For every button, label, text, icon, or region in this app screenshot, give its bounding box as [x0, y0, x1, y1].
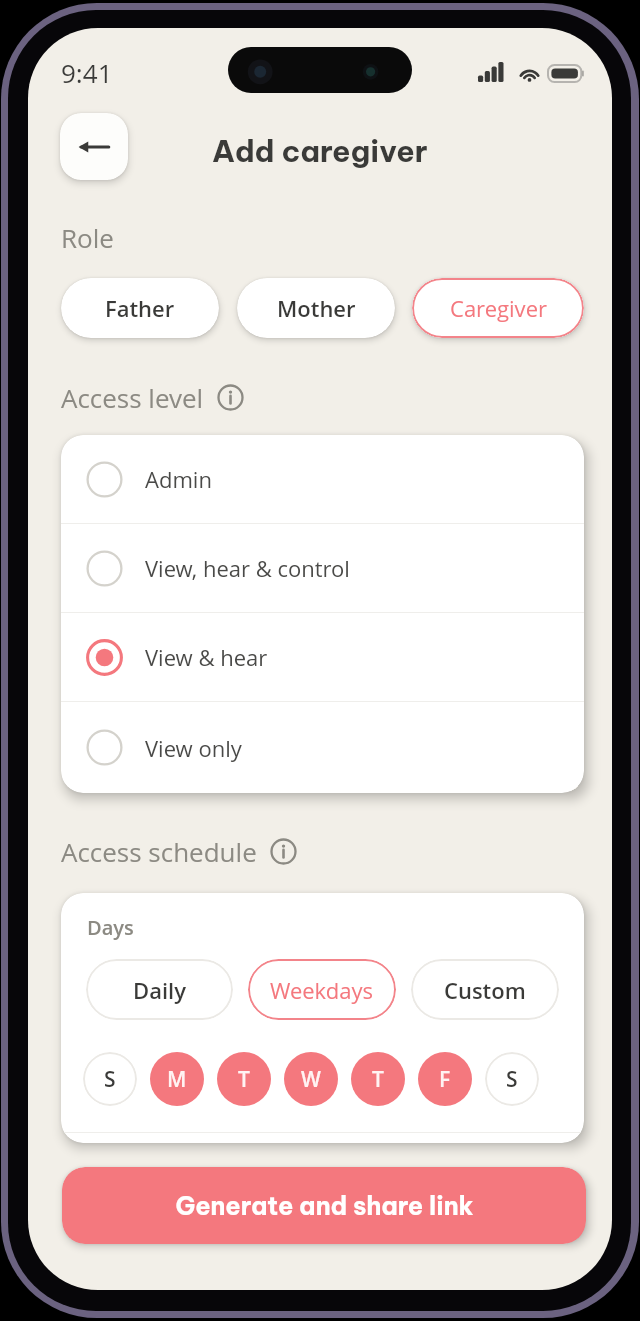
staticText: Mother [277, 293, 356, 323]
button[interactable]: Father [61, 278, 219, 338]
staticText: Access level [61, 380, 204, 415]
staticText: 9:41 [61, 55, 113, 90]
button[interactable]: W [284, 1052, 338, 1106]
staticText: Add caregiver [212, 132, 428, 170]
staticText: S [506, 1065, 518, 1094]
staticText: Custom [444, 975, 526, 1005]
staticText: View only [145, 733, 242, 763]
button[interactable]: Back [60, 113, 128, 180]
button[interactable]: F [418, 1052, 472, 1106]
staticText: W [301, 1065, 321, 1094]
button[interactable]: S [485, 1052, 539, 1106]
button[interactable]: Caregiver [412, 278, 584, 338]
staticText: View, hear & control [145, 553, 350, 583]
button[interactable]: View only [61, 702, 584, 793]
button[interactable]: Admin [61, 435, 584, 523]
button[interactable]: View & hear [61, 613, 584, 701]
staticText: Weekdays [270, 975, 374, 1005]
button[interactable]: Mother [237, 278, 395, 338]
staticText: T [372, 1065, 384, 1094]
staticText: Access schedule [61, 834, 257, 869]
staticText: Days [87, 914, 134, 941]
staticText: Father [105, 293, 175, 323]
staticText: M [167, 1065, 187, 1094]
button[interactable]: M [150, 1052, 204, 1106]
button[interactable]: T [351, 1052, 405, 1106]
staticText: F [439, 1065, 451, 1094]
staticText: Role [61, 220, 114, 255]
staticText: Admin [145, 464, 212, 494]
button[interactable]: Daily [86, 959, 233, 1020]
button[interactable]: Weekdays [248, 959, 396, 1020]
button[interactable]: Custom [411, 959, 559, 1020]
staticText: T [238, 1065, 250, 1094]
staticText: Daily [133, 975, 186, 1005]
button[interactable]: View, hear & control [61, 524, 584, 612]
staticText: View & hear [145, 642, 268, 672]
staticText: Generate and share link [175, 1190, 474, 1222]
staticText: S [104, 1065, 116, 1094]
button[interactable]: Generate and share link [62, 1167, 586, 1244]
staticText: Caregiver [450, 293, 547, 323]
button[interactable]: S [83, 1052, 137, 1106]
button[interactable]: T [217, 1052, 271, 1106]
